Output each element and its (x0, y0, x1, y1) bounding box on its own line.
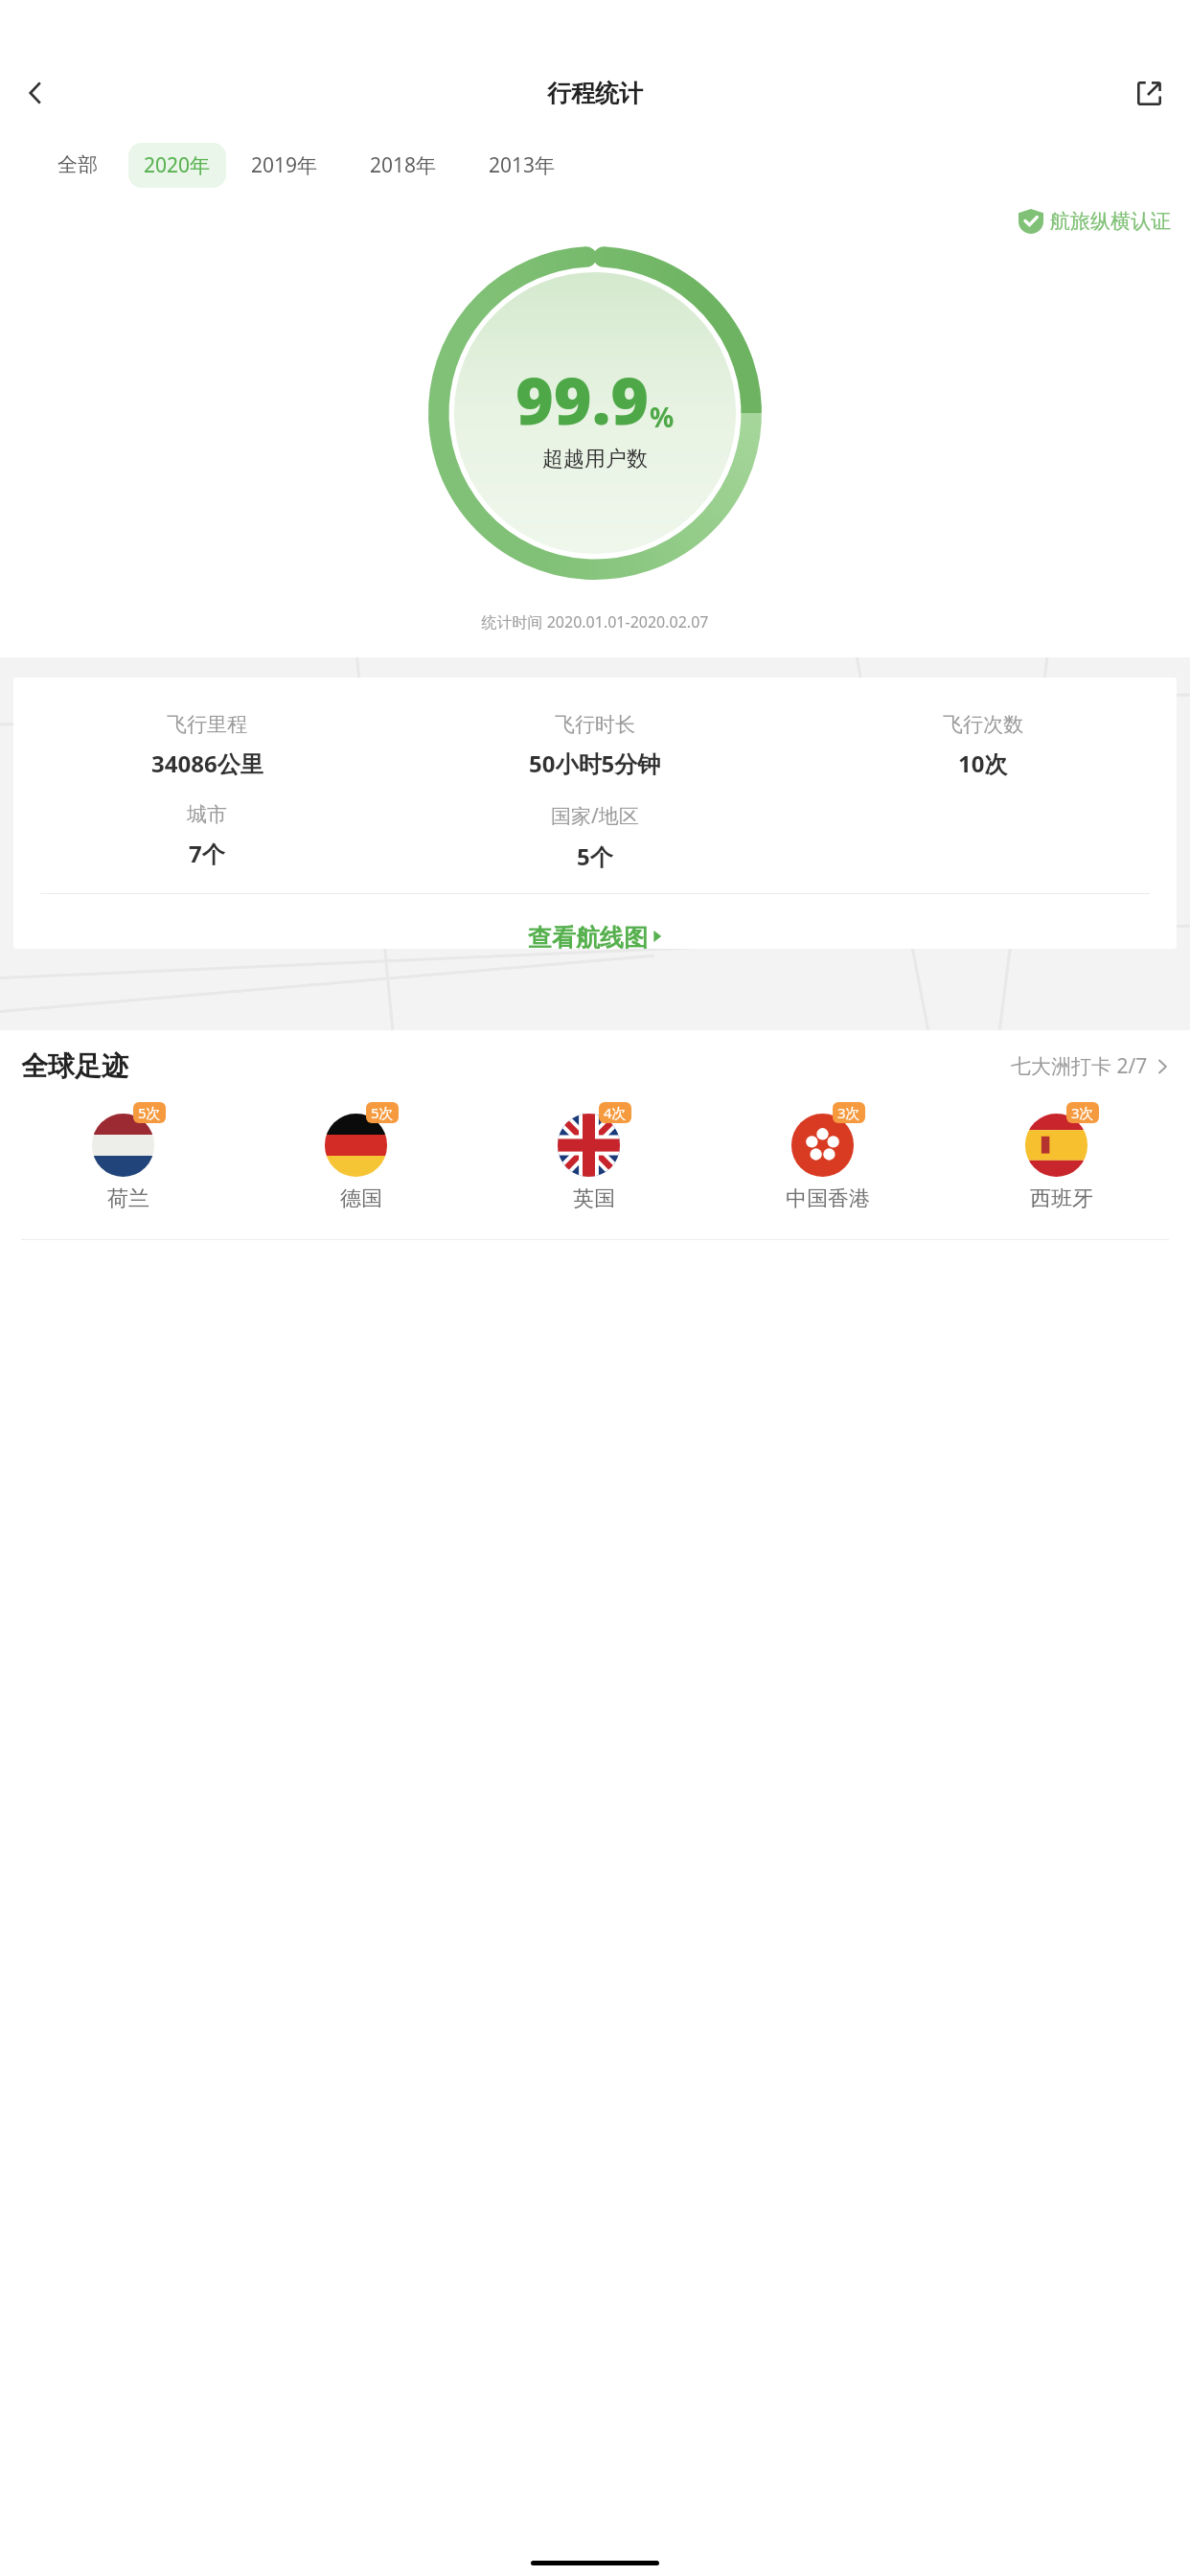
staticText: 10次 (958, 747, 1008, 779)
button[interactable]: 2020年 (128, 143, 226, 188)
staticText: 国家/地区 (551, 802, 639, 830)
button[interactable]: 2013年 (473, 143, 571, 188)
button[interactable]: 5次 (244, 1102, 477, 1212)
staticText: 查看航线图 (528, 923, 648, 949)
staticText: 行程统计 (547, 79, 643, 108)
button[interactable]: 2018年 (355, 143, 452, 188)
staticText: 3次 (1071, 1103, 1094, 1122)
staticText: 荷兰 (107, 1185, 149, 1212)
button[interactable]: 七大洲打卡 2/7 (1011, 1052, 1169, 1080)
staticText: 99.9 (515, 355, 650, 444)
staticText: 50小时5分钟 (529, 747, 661, 779)
staticText: 超越用户数 (542, 446, 648, 472)
staticText: 城市 (187, 802, 227, 827)
button[interactable]: 3次 (945, 1102, 1179, 1212)
button[interactable]: 5次 (11, 1102, 244, 1212)
staticText: 34086公里 (151, 747, 263, 779)
button[interactable]: 查看航线图 (13, 923, 1177, 949)
button[interactable]: 2019年 (236, 143, 333, 188)
staticText: 5次 (371, 1103, 394, 1122)
button[interactable]: 4次 (477, 1102, 711, 1212)
staticText: 4次 (604, 1103, 627, 1122)
staticText: 航旅纵横认证 (1050, 209, 1171, 234)
staticText: 飞行时长 (555, 712, 635, 737)
staticText: 全部 (57, 152, 98, 177)
button[interactable]: Back (10, 67, 61, 119)
staticText: 2020年 (144, 151, 211, 179)
button[interactable]: 全部 (42, 144, 113, 186)
staticText: 德国 (340, 1185, 382, 1212)
staticText: 全球足迹 (21, 1049, 128, 1083)
staticText: % (650, 399, 675, 435)
staticText: 3次 (837, 1103, 860, 1122)
staticText: 七大洲打卡 2/7 (1011, 1052, 1148, 1080)
button[interactable]: Share (1123, 67, 1175, 119)
staticText: 中国香港 (786, 1185, 870, 1212)
staticText: 5个 (577, 840, 613, 872)
staticText: 2018年 (370, 151, 437, 179)
staticText: 5次 (138, 1103, 161, 1122)
staticText: 2019年 (251, 151, 318, 179)
staticText: 飞行次数 (943, 712, 1023, 737)
staticText: 统计时间 2020.01.01-2020.02.07 (0, 611, 1190, 632)
staticText: 飞行里程 (167, 712, 247, 737)
staticText: 西班牙 (1030, 1185, 1093, 1212)
staticText: 2013年 (489, 151, 556, 179)
staticText: 英国 (573, 1185, 615, 1212)
button[interactable]: 3次 (711, 1102, 945, 1212)
staticText: 7个 (189, 838, 225, 869)
